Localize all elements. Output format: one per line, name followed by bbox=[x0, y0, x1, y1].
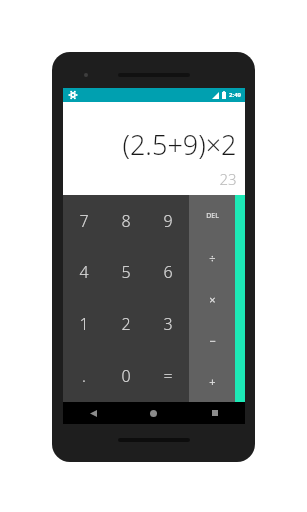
staticText: 3 bbox=[163, 313, 173, 335]
staticText: 2 bbox=[121, 313, 131, 335]
button[interactable]: 7 bbox=[63, 195, 105, 246]
button[interactable]: Back bbox=[63, 402, 123, 424]
staticText: 1 bbox=[79, 313, 89, 335]
staticText: 5 bbox=[121, 261, 131, 283]
staticText: 8 bbox=[121, 210, 131, 232]
staticText: ÷ bbox=[209, 251, 216, 266]
staticText: 0 bbox=[121, 365, 131, 387]
button[interactable]: − bbox=[189, 320, 235, 361]
button[interactable]: × bbox=[189, 279, 235, 320]
button[interactable]: + bbox=[189, 361, 235, 402]
staticText: 23 bbox=[219, 169, 237, 189]
staticText: 7 bbox=[79, 210, 89, 232]
staticText: − bbox=[209, 333, 216, 348]
staticText: DEL bbox=[206, 211, 219, 221]
staticText: + bbox=[209, 374, 216, 389]
staticText: = bbox=[163, 365, 173, 387]
button[interactable]: Recent apps bbox=[184, 402, 245, 424]
button[interactable]: 6 bbox=[147, 246, 189, 298]
button[interactable]: 2 bbox=[105, 298, 147, 350]
button[interactable]: Settings bbox=[68, 90, 78, 100]
button[interactable]: 1 bbox=[63, 298, 105, 350]
button[interactable]: ÷ bbox=[189, 237, 235, 279]
button[interactable]: 0 bbox=[105, 350, 147, 402]
staticText: 4 bbox=[79, 261, 89, 283]
button[interactable]: . bbox=[63, 350, 105, 402]
button[interactable]: 8 bbox=[105, 195, 147, 246]
button[interactable]: = bbox=[147, 350, 189, 402]
button[interactable]: 3 bbox=[147, 298, 189, 350]
staticText: . bbox=[82, 365, 86, 387]
staticText: 9 bbox=[163, 210, 173, 232]
button[interactable]: 4 bbox=[63, 246, 105, 298]
staticText: 6 bbox=[163, 261, 173, 283]
staticText: (2.5+9)×2 bbox=[122, 126, 237, 163]
button[interactable]: 5 bbox=[105, 246, 147, 298]
staticText: × bbox=[209, 292, 216, 307]
button[interactable]: Home bbox=[123, 402, 184, 424]
button[interactable]: 9 bbox=[147, 195, 189, 246]
staticText: 2:49 bbox=[229, 91, 241, 99]
button[interactable]: DEL bbox=[189, 195, 235, 237]
